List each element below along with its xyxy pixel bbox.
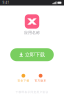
staticText: 立即下载 — [25, 51, 45, 58]
button[interactable]: 官方版本 — [34, 74, 48, 82]
staticText: 下载即表示同意用户协议 — [15, 91, 48, 94]
staticText: 安全下载 — [17, 79, 29, 82]
staticText: 官方版本 — [35, 79, 47, 82]
staticText: 9:41 — [3, 1, 10, 4]
staticText: 应用名称 — [24, 30, 40, 35]
button[interactable]: 立即下载 — [10, 48, 54, 61]
button[interactable]: 安全下载 — [16, 74, 30, 82]
